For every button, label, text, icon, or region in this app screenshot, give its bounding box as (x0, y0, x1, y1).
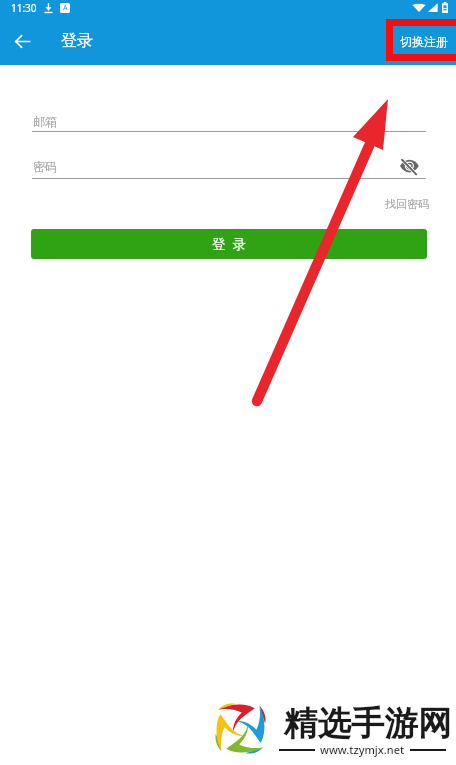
button[interactable]: 邮箱 (32, 108, 426, 132)
staticText: 切换注册 (400, 34, 448, 49)
button[interactable]: 找回密码 (379, 191, 435, 217)
staticText: 找回密码 (385, 197, 429, 211)
button[interactable]: Back (6, 25, 38, 57)
button[interactable]: 登 录 (31, 229, 427, 259)
staticText: 精选手游网 (284, 703, 452, 745)
staticText: 登 录 (212, 235, 247, 253)
staticText: A (63, 3, 68, 13)
staticText: 登录 (61, 31, 93, 51)
button[interactable]: 密码 (32, 153, 394, 178)
staticText: 11:30 (11, 1, 37, 15)
staticText: www.tzymjx.net (320, 742, 405, 757)
button[interactable]: 切换注册 (394, 28, 454, 55)
button[interactable]: Show password (400, 157, 420, 177)
staticText: 邮箱 (33, 114, 57, 129)
staticText: 密码 (33, 159, 57, 174)
